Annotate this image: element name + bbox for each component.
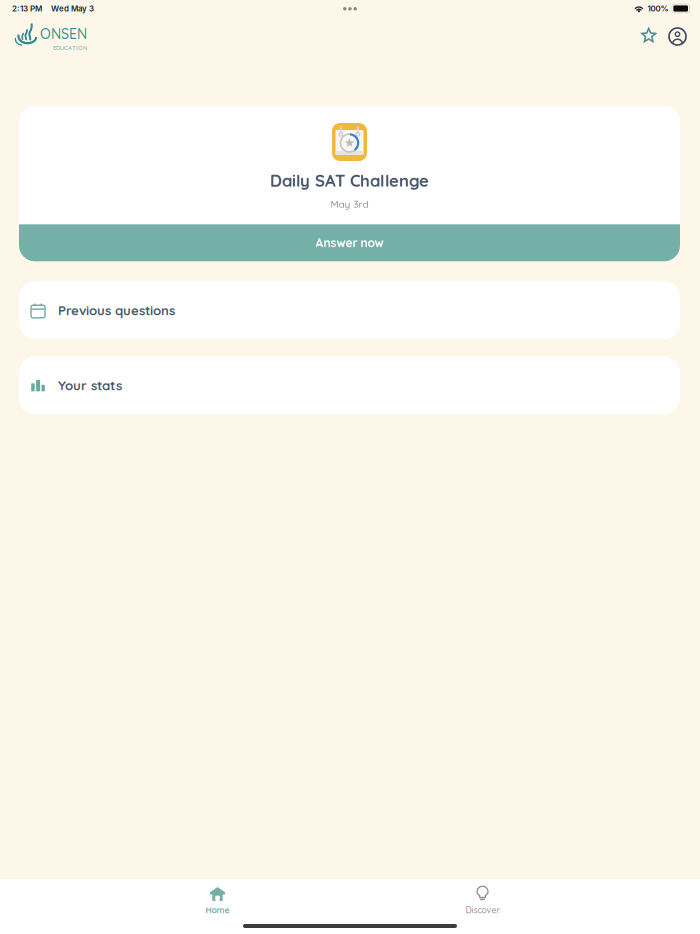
staticText: Previous questions xyxy=(58,302,175,319)
staticText: Wed May 3 xyxy=(51,4,94,13)
button[interactable]: Account xyxy=(663,22,692,51)
button[interactable]: Previous questions xyxy=(19,281,680,339)
staticText: ONSEN xyxy=(40,25,87,42)
button[interactable]: Home xyxy=(85,879,350,915)
staticText: 2:13 PM xyxy=(12,4,42,13)
staticText: Discover xyxy=(465,904,499,915)
button[interactable]: Your stats xyxy=(19,356,680,414)
staticText: Daily SAT Challenge xyxy=(270,170,429,191)
staticText: Your stats xyxy=(58,377,122,394)
button[interactable]: Discover xyxy=(350,879,615,915)
staticText: May 3rd xyxy=(330,198,368,210)
button[interactable]: Answer now xyxy=(19,224,680,261)
staticText: 100% xyxy=(647,4,668,13)
staticText: EDUCATION xyxy=(53,44,87,51)
staticText: Home xyxy=(205,904,229,915)
staticText: Answer now xyxy=(315,235,383,250)
button[interactable]: Favourites xyxy=(635,22,664,51)
